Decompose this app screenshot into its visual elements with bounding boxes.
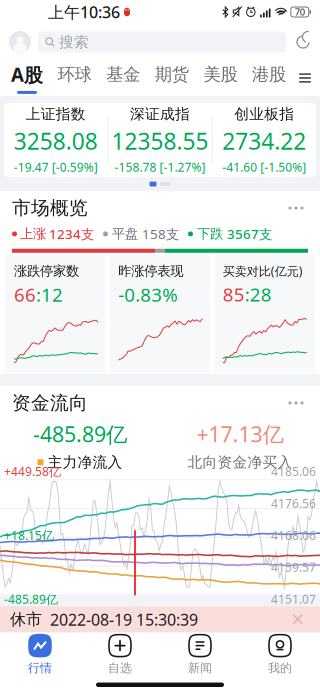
staticText: 上证指数	[26, 105, 86, 123]
staticText: :12	[36, 282, 63, 307]
button[interactable]: 行情	[0, 630, 80, 679]
button[interactable]: A股	[8, 62, 46, 94]
staticText: 4159.57	[271, 559, 316, 575]
staticText: 85	[223, 282, 245, 307]
button[interactable]: 更多	[284, 198, 308, 218]
staticText: 4176.56	[271, 495, 316, 511]
staticText: 12358.55	[111, 126, 208, 156]
button[interactable]: 更多	[284, 393, 308, 413]
staticText: 自选	[108, 661, 132, 675]
staticText: -485.89亿	[33, 420, 127, 448]
staticText: 158支	[142, 225, 179, 243]
staticText: 1234支	[49, 225, 94, 243]
staticText: 3567支	[227, 225, 272, 243]
staticText: 期货	[155, 64, 189, 85]
staticText: -0.83%	[118, 282, 178, 307]
button[interactable]: 关闭	[286, 607, 310, 631]
staticText: 主力净流入	[47, 453, 122, 471]
button[interactable]: 期货	[152, 64, 192, 92]
staticText: 新闻	[188, 661, 212, 675]
staticText: 买卖对比(亿元)	[223, 263, 303, 279]
staticText: -485.89亿	[4, 591, 58, 607]
staticText: ✕	[290, 610, 305, 629]
staticText: +18.15亿	[4, 527, 54, 543]
staticText: 下跌	[197, 226, 223, 242]
staticText: 资金流向	[12, 391, 88, 414]
staticText: 美股	[203, 64, 237, 85]
staticText: 2022-08-19 15:30:39	[50, 609, 198, 630]
staticText: -41.60 [-1.50%]	[222, 159, 306, 175]
button[interactable]: 夜间模式	[292, 31, 314, 53]
staticText: 港股	[252, 64, 286, 85]
button[interactable]: 新闻	[160, 630, 240, 679]
button[interactable]: 环球	[55, 64, 95, 92]
staticText: 搜索	[59, 33, 89, 51]
button[interactable]: 个人中心	[8, 30, 32, 54]
staticText: 4185.06	[271, 463, 316, 479]
button[interactable]: 上证指数	[4, 103, 107, 177]
staticText: 平盘	[112, 226, 138, 242]
staticText: 深证成指	[130, 105, 190, 123]
staticText: 4168.06	[271, 527, 316, 543]
button[interactable]: 创业板指	[213, 103, 316, 177]
staticText: A股	[11, 62, 43, 87]
button[interactable]: 自选	[80, 630, 160, 679]
button[interactable]: 搜索	[38, 31, 286, 52]
staticText: 涨跌停家数	[14, 263, 79, 279]
staticText: 行情	[28, 661, 52, 675]
button[interactable]: 深证成指	[108, 103, 212, 177]
staticText: 70	[295, 6, 305, 18]
staticText: 昨涨停表现	[118, 263, 183, 279]
staticText: :28	[245, 282, 272, 307]
staticText: +17.13亿	[196, 420, 283, 448]
staticText: 我的	[268, 661, 292, 675]
staticText: 北向资金净买入	[187, 453, 292, 471]
staticText: 基金	[106, 64, 140, 85]
button[interactable]: 美股	[200, 64, 240, 92]
staticText: 3258.08	[14, 126, 98, 156]
button[interactable]: 更多板块	[295, 66, 315, 90]
staticText: 上涨	[20, 226, 46, 242]
staticText: +449.58亿	[4, 463, 61, 479]
button[interactable]: 我的	[240, 630, 320, 679]
staticText: 休市	[10, 610, 42, 629]
button[interactable]: 港股	[249, 64, 289, 92]
staticText: 4151.07	[271, 591, 316, 607]
staticText: 市场概览	[12, 197, 88, 219]
staticText: 66	[14, 282, 36, 307]
staticText: 2734.22	[222, 126, 306, 156]
staticText: -158.78 [-1.27%]	[114, 159, 205, 175]
staticText: 创业板指	[234, 105, 294, 123]
staticText: 上午10:36	[48, 1, 120, 23]
button[interactable]: 基金	[103, 64, 143, 92]
staticText: 环球	[58, 64, 92, 85]
staticText: -19.47 [-0.59%]	[14, 159, 98, 175]
